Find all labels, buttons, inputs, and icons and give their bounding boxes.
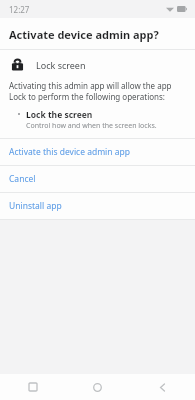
staticText: Cancel <box>9 173 36 185</box>
button[interactable]: Recent apps <box>0 374 65 400</box>
staticText: Activating this admin app will allow the… <box>9 80 172 102</box>
button[interactable]: Uninstall app <box>0 193 195 219</box>
staticText: Activate this device admin app <box>9 146 130 158</box>
staticText: 12:27 <box>9 4 30 15</box>
staticText: Lock screen <box>36 59 86 71</box>
staticText: Uninstall app <box>9 200 62 212</box>
staticText: Lock the screen <box>26 109 93 121</box>
button[interactable]: Home <box>65 374 130 400</box>
button[interactable]: Lock screen <box>0 50 195 78</box>
button[interactable]: Back <box>130 374 195 400</box>
button[interactable]: Cancel <box>0 166 195 192</box>
button[interactable]: Activate this device admin app <box>0 139 195 165</box>
staticText: Activate device admin app? <box>9 27 159 42</box>
staticText: Control how and when the screen locks. <box>26 121 157 131</box>
